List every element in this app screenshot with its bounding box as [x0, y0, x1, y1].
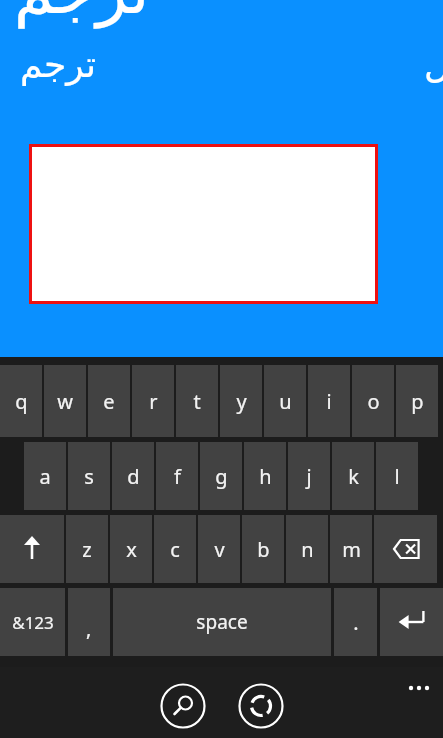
- staticText: l: [394, 463, 400, 490]
- staticText: a: [39, 463, 51, 490]
- button[interactable]: j: [288, 442, 330, 510]
- staticText: s: [84, 463, 94, 490]
- button[interactable]: r: [132, 365, 174, 437]
- staticText: g: [215, 463, 228, 490]
- staticText: t: [193, 388, 201, 415]
- staticText: k: [348, 463, 359, 490]
- staticText: q: [15, 388, 28, 415]
- staticText: n: [301, 536, 314, 563]
- staticText: .: [353, 609, 359, 636]
- staticText: &123: [12, 611, 54, 634]
- button[interactable]: d: [112, 442, 154, 510]
- staticText: d: [127, 463, 140, 490]
- button[interactable]: k: [332, 442, 374, 510]
- button[interactable]: h: [244, 442, 286, 510]
- staticText: v: [214, 536, 225, 563]
- button[interactable]: b: [242, 515, 284, 583]
- staticText: y: [236, 388, 247, 415]
- button[interactable]: y: [220, 365, 262, 437]
- button[interactable]: More options: [395, 667, 443, 715]
- staticText: r: [149, 388, 158, 415]
- button[interactable]: .: [334, 588, 377, 656]
- staticText: ل: [424, 44, 443, 86]
- staticText: ,: [86, 615, 92, 642]
- button[interactable]: Enter: [380, 588, 443, 656]
- staticText: p: [411, 388, 424, 415]
- staticText: ترجم: [20, 44, 97, 86]
- button[interactable]: &123: [0, 588, 65, 656]
- button[interactable]: s: [68, 442, 110, 510]
- button[interactable]: n: [286, 515, 328, 583]
- button[interactable]: q: [0, 365, 42, 437]
- button[interactable]: ,: [68, 588, 110, 656]
- staticText: u: [279, 388, 292, 415]
- button[interactable]: t: [176, 365, 218, 437]
- button[interactable]: Translate: [233, 678, 289, 734]
- staticText: ترجم: [14, 0, 150, 29]
- staticText: j: [306, 463, 312, 490]
- staticText: h: [259, 463, 272, 490]
- button[interactable]: a: [24, 442, 66, 510]
- button[interactable]: u: [264, 365, 306, 437]
- staticText: m: [342, 536, 361, 563]
- button[interactable]: w: [44, 365, 86, 437]
- button[interactable]: m: [330, 515, 372, 583]
- staticText: b: [257, 536, 270, 563]
- staticText: i: [326, 388, 332, 415]
- button[interactable]: f: [156, 442, 198, 510]
- button[interactable]: g: [200, 442, 242, 510]
- staticText: e: [103, 388, 115, 415]
- button[interactable]: x: [110, 515, 152, 583]
- button[interactable]: Shift: [0, 515, 64, 583]
- button[interactable]: p: [396, 365, 438, 437]
- staticText: z: [82, 536, 92, 563]
- staticText: c: [170, 536, 180, 563]
- staticText: f: [174, 463, 181, 490]
- button[interactable]: z: [66, 515, 108, 583]
- staticText: o: [367, 388, 380, 415]
- button[interactable]: c: [154, 515, 196, 583]
- button[interactable]: o: [352, 365, 394, 437]
- button[interactable]: space: [113, 588, 331, 656]
- button[interactable]: i: [308, 365, 350, 437]
- button[interactable]: Search: [155, 678, 211, 734]
- staticText: x: [126, 536, 137, 563]
- staticText: space: [196, 609, 248, 635]
- button[interactable]: v: [198, 515, 240, 583]
- button[interactable]: l: [376, 442, 418, 510]
- button[interactable]: Backspace: [374, 515, 437, 583]
- button[interactable]: e: [88, 365, 130, 437]
- staticText: w: [57, 388, 73, 415]
